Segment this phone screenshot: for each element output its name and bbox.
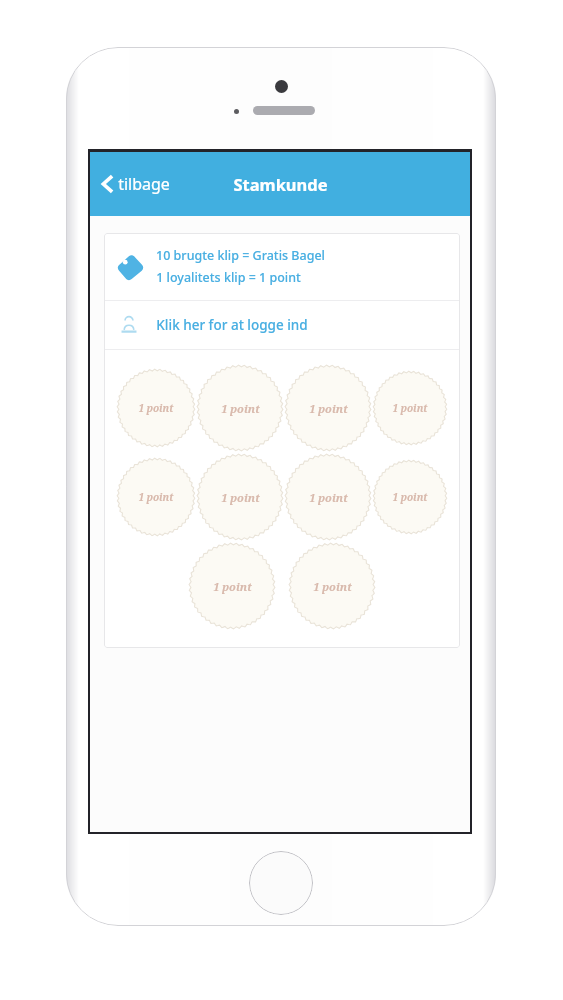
button[interactable]: 1 point stamp xyxy=(188,542,276,630)
button[interactable]: 1 point stamp xyxy=(196,364,284,452)
button[interactable]: 10 brugte klip = Gratis Bagel xyxy=(104,233,460,300)
staticText: 1 point xyxy=(221,401,260,416)
button[interactable]: Klik her for at logge ind xyxy=(104,301,460,349)
button[interactable]: 1 point stamp xyxy=(372,457,448,537)
staticText: 1 loyalitets klip = 1 point xyxy=(156,269,301,286)
staticText: 1 point xyxy=(221,490,260,505)
staticText: 1 point xyxy=(392,401,428,415)
button[interactable]: 1 point stamp xyxy=(116,457,196,537)
staticText: 1 point xyxy=(392,490,428,504)
staticText: 1 point xyxy=(313,579,352,594)
button[interactable]: 1 point stamp xyxy=(288,542,376,630)
staticText: tilbage xyxy=(118,173,170,195)
staticText: 1 point xyxy=(309,490,348,505)
button[interactable]: Home xyxy=(249,851,313,915)
staticText: 1 point xyxy=(213,579,252,594)
button[interactable]: 1 point stamp xyxy=(284,364,372,452)
staticText: 1 point xyxy=(309,401,348,416)
button[interactable]: 1 point stamp xyxy=(284,453,372,541)
button[interactable]: 1 point stamp xyxy=(196,453,284,541)
button[interactable]: tilbage xyxy=(96,167,176,201)
staticText: 1 point xyxy=(138,490,174,504)
staticText: 10 brugte klip = Gratis Bagel xyxy=(156,247,325,264)
button[interactable]: 1 point stamp xyxy=(116,368,196,448)
staticText: Stamkunde xyxy=(233,173,328,195)
staticText: 1 point xyxy=(138,401,174,415)
staticText: Klik her for at logge ind xyxy=(156,316,308,334)
button[interactable]: 1 point stamp xyxy=(372,368,448,448)
